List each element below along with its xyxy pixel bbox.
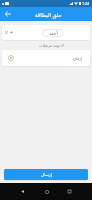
- button[interactable]: Home: [38, 183, 55, 200]
- staticText: لا توجد مرفقات: [39, 43, 64, 48]
- staticText: إرسال: [41, 172, 52, 177]
- button[interactable]: إرسال: [4, 169, 88, 180]
- button[interactable]: Back: [2, 8, 14, 20]
- staticText: 1:24: [82, 1, 90, 6]
- staticText: حلق البطاقة: [35, 11, 62, 18]
- button[interactable]: Recent apps: [61, 183, 78, 200]
- button[interactable]: Add contact: [9, 30, 14, 35]
- button[interactable]: أحمد: [42, 29, 64, 37]
- button[interactable]: Clear: [4, 30, 9, 35]
- staticText: إرفاق: [73, 56, 83, 61]
- button[interactable]: إرفاق: [2, 50, 90, 66]
- button[interactable]: Back: [14, 183, 31, 200]
- staticText: أحمد: [49, 31, 58, 36]
